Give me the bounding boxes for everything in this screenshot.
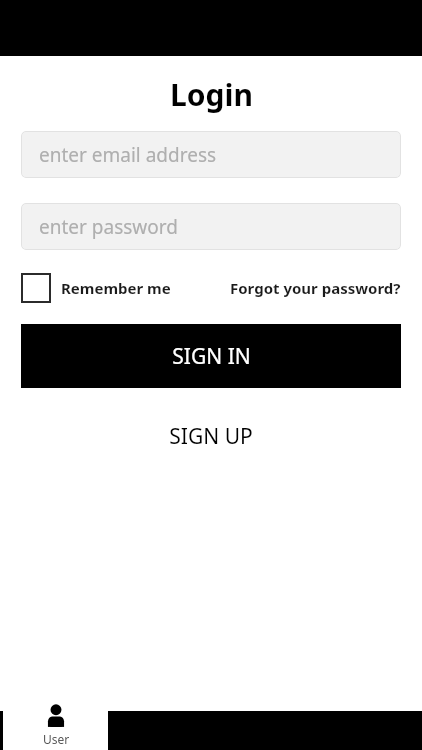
staticText: enter email address xyxy=(39,142,217,168)
button[interactable]: SIGN UP xyxy=(0,415,422,457)
staticText: Forgot your password? xyxy=(230,278,401,298)
staticText: Remember me xyxy=(61,278,171,298)
button[interactable]: enter password xyxy=(21,203,401,250)
staticText: Login xyxy=(170,74,253,114)
staticText: SIGN UP xyxy=(169,422,253,451)
button[interactable]: Forgot your password? xyxy=(230,278,401,298)
staticText: enter password xyxy=(39,214,178,240)
button[interactable]: Remember me xyxy=(21,273,171,303)
button[interactable]: SIGN IN xyxy=(21,324,401,388)
staticText: SIGN IN xyxy=(172,342,251,371)
button[interactable]: User xyxy=(23,703,89,750)
button[interactable]: enter email address xyxy=(21,131,401,178)
staticText: User xyxy=(23,731,89,747)
